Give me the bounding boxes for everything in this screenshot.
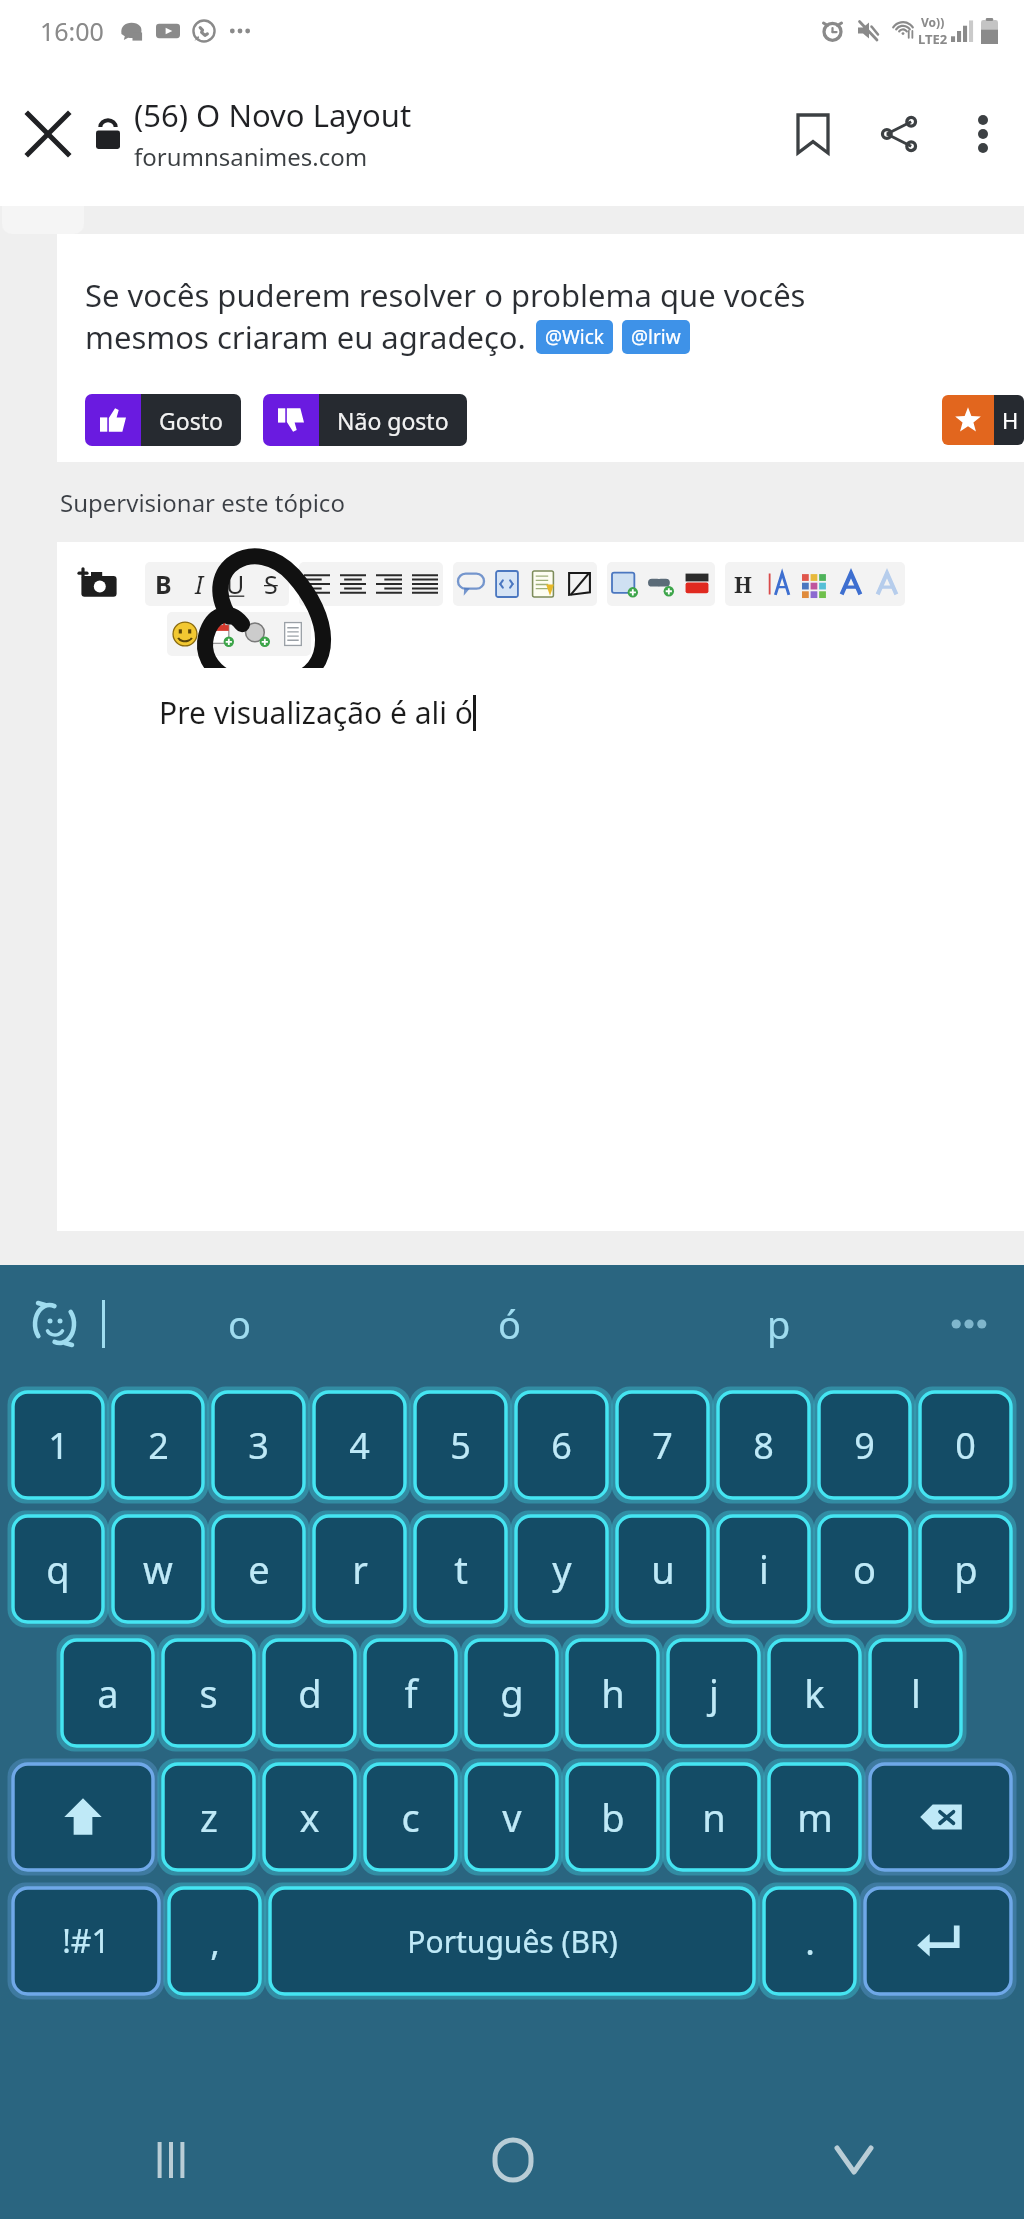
button[interactable]: b: [567, 1764, 658, 1870]
button[interactable]: 3: [213, 1392, 304, 1498]
button[interactable]: h: [567, 1640, 658, 1746]
staticText: k: [804, 1667, 825, 1719]
staticText: c: [401, 1791, 420, 1843]
button[interactable]: Editor tool: [167, 612, 203, 656]
button[interactable]: 8: [718, 1392, 809, 1498]
button[interactable]: k: [769, 1640, 860, 1746]
button[interactable]: Home: [342, 2100, 683, 2219]
button[interactable]: Close: [0, 86, 96, 182]
button[interactable]: Editor tool: [679, 562, 715, 606]
button[interactable]: s: [163, 1640, 254, 1746]
button[interactable]: More options: [942, 93, 1024, 175]
staticText: p: [767, 1298, 791, 1350]
staticText: h: [601, 1667, 625, 1719]
button[interactable]: Editor tool: [525, 562, 561, 606]
button[interactable]: a: [62, 1640, 153, 1746]
button[interactable]: ó: [374, 1265, 644, 1383]
button[interactable]: Não gosto: [263, 394, 467, 446]
button[interactable]: Recents: [0, 2100, 342, 2219]
button[interactable]: B: [145, 562, 181, 606]
button[interactable]: Editor tool: [489, 562, 525, 606]
button[interactable]: Backspace: [870, 1764, 1011, 1870]
staticText: 5: [450, 1421, 471, 1470]
staticText: forumnsanimes.com: [134, 140, 368, 173]
button[interactable]: 1: [13, 1392, 103, 1498]
button[interactable]: 4: [314, 1392, 405, 1498]
button[interactable]: Editor tool: [797, 562, 833, 606]
button[interactable]: Editor tool: [239, 612, 275, 656]
staticText: g: [500, 1667, 524, 1719]
button[interactable]: !#1: [13, 1888, 159, 1994]
button[interactable]: @lriw: [622, 320, 690, 354]
button[interactable]: q: [13, 1516, 103, 1622]
button[interactable]: 7: [617, 1392, 708, 1498]
button[interactable]: m: [769, 1764, 860, 1870]
button[interactable]: I: [181, 562, 217, 606]
button[interactable]: Editor tool: [761, 562, 797, 606]
button[interactable]: p: [920, 1516, 1011, 1622]
button[interactable]: i: [718, 1516, 809, 1622]
button[interactable]: Editor tool: [607, 562, 643, 606]
button[interactable]: 2: [113, 1392, 203, 1498]
button[interactable]: H: [725, 562, 761, 606]
button[interactable]: p: [644, 1265, 914, 1383]
button[interactable]: Editor tool: [561, 562, 597, 606]
button[interactable]: Supervisionar este tópico: [60, 486, 345, 519]
button[interactable]: Editor tool: [335, 562, 371, 606]
button[interactable]: Editor tool: [453, 562, 489, 606]
button[interactable]: l: [870, 1640, 961, 1746]
button[interactable]: ,: [169, 1888, 260, 1994]
button[interactable]: Editor tool: [371, 562, 407, 606]
button[interactable]: o: [105, 1265, 374, 1383]
staticText: u: [651, 1543, 675, 1595]
button[interactable]: Bookmark: [770, 91, 856, 177]
button[interactable]: Editor tool: [869, 562, 905, 606]
button[interactable]: .: [764, 1888, 855, 1994]
button[interactable]: 0: [920, 1392, 1011, 1498]
button[interactable]: Share: [856, 91, 942, 177]
button[interactable]: y: [516, 1516, 607, 1622]
button[interactable]: 5: [415, 1392, 506, 1498]
button[interactable]: r: [314, 1516, 405, 1622]
button[interactable]: z: [163, 1764, 254, 1870]
button[interactable]: Editor tool: [833, 562, 869, 606]
staticText: f: [404, 1667, 418, 1719]
button[interactable]: Enter: [865, 1888, 1011, 1994]
button[interactable]: More suggestions: [914, 1265, 1024, 1383]
button[interactable]: c: [365, 1764, 456, 1870]
button[interactable]: Editor tool: [407, 562, 443, 606]
button[interactable]: f: [365, 1640, 456, 1746]
button[interactable]: 6: [516, 1392, 607, 1498]
button[interactable]: v: [466, 1764, 557, 1870]
button[interactable]: n: [668, 1764, 759, 1870]
button[interactable]: Editor tool: [275, 612, 311, 656]
button[interactable]: Português (BR): [270, 1888, 754, 1994]
button[interactable]: Editor tool: [299, 562, 335, 606]
staticText: n: [702, 1791, 726, 1843]
button[interactable]: Editor tool: [643, 562, 679, 606]
button[interactable]: g: [466, 1640, 557, 1746]
staticText: w: [143, 1543, 173, 1595]
button[interactable]: Editor tool: [203, 612, 239, 656]
button[interactable]: t: [415, 1516, 506, 1622]
button[interactable]: o: [819, 1516, 910, 1622]
button[interactable]: u: [617, 1516, 708, 1622]
button[interactable]: @Wick: [536, 320, 613, 354]
staticText: H: [1002, 405, 1019, 435]
staticText: z: [200, 1791, 218, 1843]
button[interactable]: Hide keyboard: [683, 2100, 1024, 2219]
button[interactable]: x: [264, 1764, 355, 1870]
button[interactable]: d: [264, 1640, 355, 1746]
staticText: Pre visualização é ali ó: [159, 692, 473, 733]
button[interactable]: e: [213, 1516, 304, 1622]
button[interactable]: Camera: [79, 564, 119, 604]
button[interactable]: w: [113, 1516, 203, 1622]
button[interactable]: Shift: [13, 1764, 153, 1870]
button[interactable]: U: [217, 562, 253, 606]
button[interactable]: Emoji: [30, 1299, 80, 1349]
button[interactable]: H: [942, 395, 1024, 445]
button[interactable]: S: [253, 562, 289, 606]
button[interactable]: Gosto: [85, 394, 241, 446]
button[interactable]: 9: [819, 1392, 910, 1498]
button[interactable]: j: [668, 1640, 759, 1746]
